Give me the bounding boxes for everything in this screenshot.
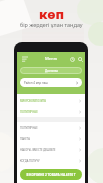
staticText: көп <box>39 5 65 23</box>
button[interactable]: Menu <box>18 52 31 65</box>
button[interactable]: В КОРЗИНЕ 2 ТОВАРА НА 4510 Т <box>20 169 82 180</box>
staticText: Район 4 мкр наш <box>24 81 75 85</box>
button[interactable]: ПАКЕТЫ <box>17 133 85 144</box>
button[interactable]: МИКРОКОМПОЗИТЫ <box>17 95 85 106</box>
staticText: ПОПУЛЯРНЫЕ <box>20 110 78 114</box>
staticText: ПОПУЛЯРНЫЕ <box>20 126 78 130</box>
staticText: бір жердегі ұлан таңдау <box>20 21 83 28</box>
button[interactable]: КОГДА ПОЛУЧУ <box>17 155 85 166</box>
button[interactable]: НАБОРЫ- ВМЕСТЕ ДЕШЕВЛЕ <box>17 144 85 155</box>
staticText: МИКРОКОМПОЗИТЫ <box>20 99 78 103</box>
button[interactable]: Search <box>76 55 84 63</box>
staticText: КОГДА ПОЛУЧУ <box>20 159 78 163</box>
button[interactable]: ПОПУЛЯРНЫЕ <box>17 122 85 133</box>
staticText: НАБОРЫ- ВМЕСТЕ ДЕШЕВЛЕ <box>20 148 78 152</box>
button[interactable]: Доставка <box>20 67 82 74</box>
button[interactable]: Orders <box>68 55 76 63</box>
button[interactable]: ПОПУЛЯРНЫЕ <box>17 106 85 117</box>
button[interactable]: Район 4 мкр наш <box>20 78 82 87</box>
staticText: В КОРЗИНЕ 2 ТОВАРА НА 4510 Т <box>26 173 76 177</box>
staticText: Доставка <box>45 69 58 73</box>
staticText: Меню <box>45 56 58 62</box>
staticText: ПАКЕТЫ <box>20 137 78 141</box>
